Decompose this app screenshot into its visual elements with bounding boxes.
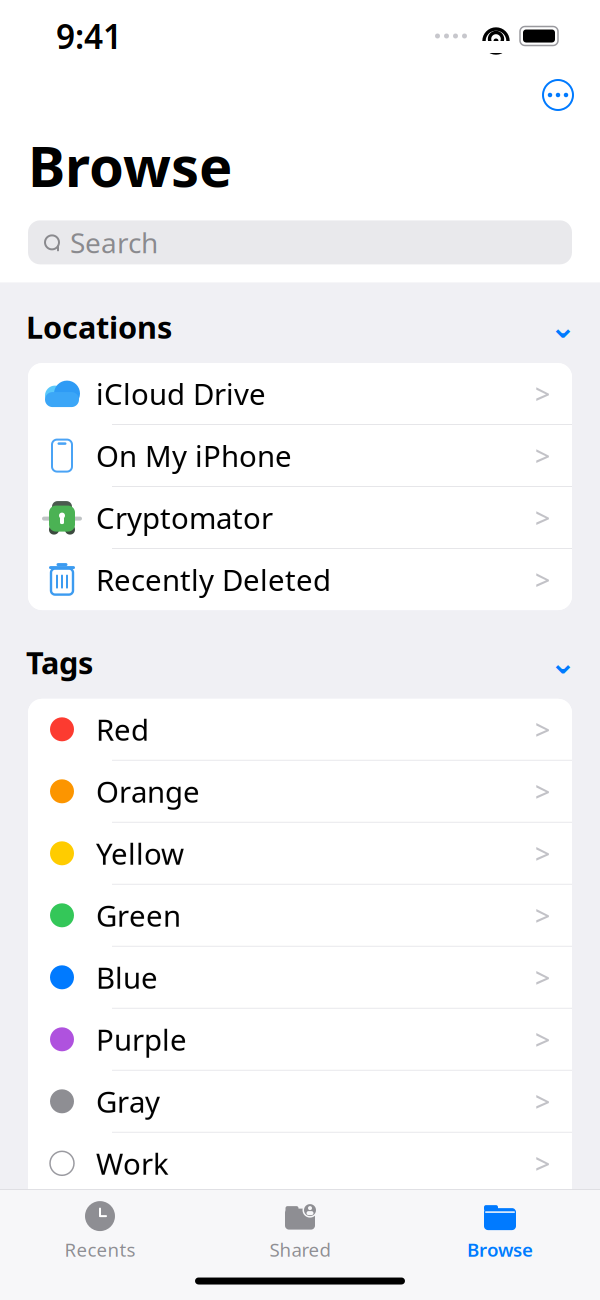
button[interactable]: Search bbox=[28, 220, 572, 264]
staticText: Shared bbox=[269, 1237, 330, 1262]
button[interactable]: Yellow bbox=[28, 823, 572, 884]
staticText: Browse bbox=[467, 1237, 533, 1262]
button[interactable]: Cryptomator bbox=[28, 487, 572, 548]
staticText: 9:41 bbox=[56, 14, 122, 58]
staticText: Recents bbox=[64, 1237, 135, 1262]
staticText: On My iPhone bbox=[96, 436, 292, 475]
staticText: > bbox=[535, 712, 550, 747]
staticText: > bbox=[535, 960, 550, 995]
staticText: ⌄ bbox=[549, 309, 576, 345]
button[interactable]: More options bbox=[536, 73, 580, 117]
button[interactable]: Recently Deleted bbox=[28, 549, 572, 610]
button[interactable]: iCloud Drive bbox=[28, 363, 572, 424]
button[interactable]: Purple bbox=[28, 1009, 572, 1070]
staticText: Search bbox=[70, 224, 158, 261]
button[interactable]: Gray bbox=[28, 1071, 572, 1132]
staticText: > bbox=[535, 774, 550, 809]
staticText: > bbox=[535, 562, 550, 597]
button[interactable]: Collapse Tags bbox=[550, 651, 576, 673]
button[interactable]: Recents bbox=[0, 1190, 200, 1262]
staticText: Work bbox=[96, 1144, 169, 1183]
staticText: Green bbox=[96, 896, 181, 935]
staticText: Locations bbox=[26, 306, 172, 347]
button[interactable]: On My iPhone bbox=[28, 425, 572, 486]
button[interactable]: Blue bbox=[28, 947, 572, 1008]
staticText: > bbox=[535, 898, 550, 933]
staticText: > bbox=[535, 376, 550, 411]
button[interactable]: Green bbox=[28, 885, 572, 946]
staticText: ⌄ bbox=[549, 644, 576, 681]
staticText: iCloud Drive bbox=[96, 374, 266, 413]
staticText: Purple bbox=[96, 1020, 187, 1059]
staticText: Cryptomator bbox=[96, 498, 273, 537]
button[interactable]: Browse bbox=[400, 1190, 600, 1262]
staticText: Browse bbox=[28, 128, 232, 202]
staticText: Recently Deleted bbox=[96, 560, 331, 599]
staticText: > bbox=[535, 1146, 550, 1181]
button[interactable]: Home bbox=[28, 1195, 572, 1256]
staticText: > bbox=[535, 1084, 550, 1119]
staticText: Yellow bbox=[96, 834, 184, 873]
button[interactable]: Collapse Locations bbox=[550, 316, 576, 338]
staticText: Blue bbox=[96, 958, 158, 997]
staticText: > bbox=[535, 438, 550, 473]
staticText: > bbox=[535, 836, 550, 871]
staticText: Red bbox=[96, 710, 149, 749]
staticText: Home bbox=[96, 1206, 180, 1245]
staticText: Gray bbox=[96, 1082, 160, 1121]
button[interactable]: Shared bbox=[200, 1190, 400, 1262]
button[interactable]: Work bbox=[28, 1133, 572, 1194]
staticText: Tags bbox=[26, 642, 93, 683]
staticText: > bbox=[535, 1022, 550, 1057]
staticText: > bbox=[535, 500, 550, 535]
button[interactable]: Orange bbox=[28, 761, 572, 822]
staticText: Orange bbox=[96, 772, 200, 811]
button[interactable]: Red bbox=[28, 699, 572, 760]
